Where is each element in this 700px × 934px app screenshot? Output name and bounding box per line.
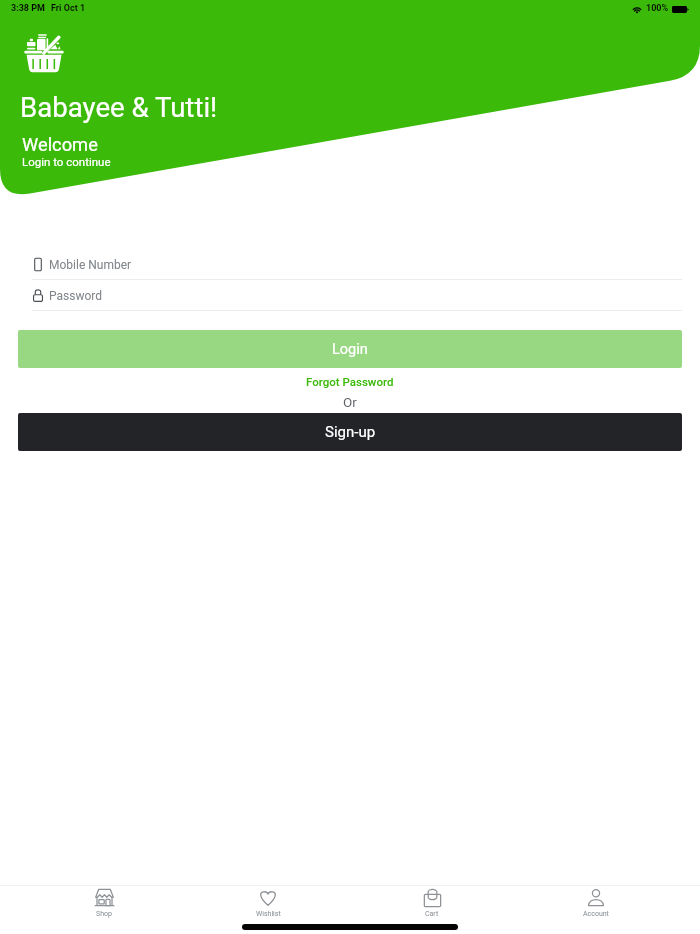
staticText: Babayee & Tutti!: [20, 91, 218, 123]
staticText: Account: [583, 910, 609, 918]
other: Cart: [424, 889, 441, 907]
button[interactable]: Password: [32, 281, 682, 310]
button[interactable]: Account: [514, 888, 678, 920]
staticText: Or: [343, 394, 357, 410]
staticText: Shop: [96, 910, 112, 918]
staticText: Wishlist: [256, 910, 281, 918]
button[interactable]: Wishlist: [186, 888, 350, 920]
other: Account: [588, 889, 604, 906]
button[interactable]: Cart: [350, 888, 514, 920]
staticText: Login to continue: [22, 155, 111, 168]
staticText: Welcome: [22, 134, 98, 155]
staticText: Password: [49, 289, 103, 303]
staticText: 100%: [646, 3, 669, 14]
staticText: Cart: [425, 910, 439, 918]
other: Wishlist: [260, 890, 276, 906]
button[interactable]: Shop: [22, 888, 186, 920]
button[interactable]: Sign-up: [18, 413, 682, 451]
staticText: Sign-up: [325, 423, 376, 441]
staticText: 3:38 PM: [11, 3, 45, 14]
staticText: Fri Oct 1: [51, 3, 86, 14]
staticText: Login: [332, 341, 368, 358]
other: Shop: [95, 889, 114, 906]
button[interactable]: Mobile Number: [32, 250, 682, 279]
button[interactable]: Forgot Password: [302, 374, 398, 389]
button[interactable]: Login: [18, 330, 682, 368]
staticText: Mobile Number: [49, 258, 132, 272]
